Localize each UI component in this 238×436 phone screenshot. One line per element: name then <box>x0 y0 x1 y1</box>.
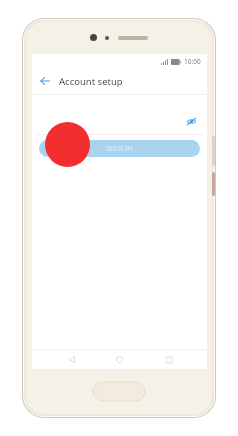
button[interactable]: Back <box>36 72 54 90</box>
staticText: 10:00 <box>184 57 201 66</box>
staticText: SIGN IN <box>106 144 133 154</box>
button[interactable]: Home <box>110 350 129 369</box>
button[interactable]: Hide password <box>183 113 199 129</box>
button[interactable]: Recent apps <box>159 350 178 369</box>
button[interactable]: Back <box>62 350 81 369</box>
staticText: Account setup <box>59 75 123 88</box>
button[interactable]: Hide password <box>32 108 207 134</box>
button[interactable]: SIGN IN <box>39 140 200 157</box>
